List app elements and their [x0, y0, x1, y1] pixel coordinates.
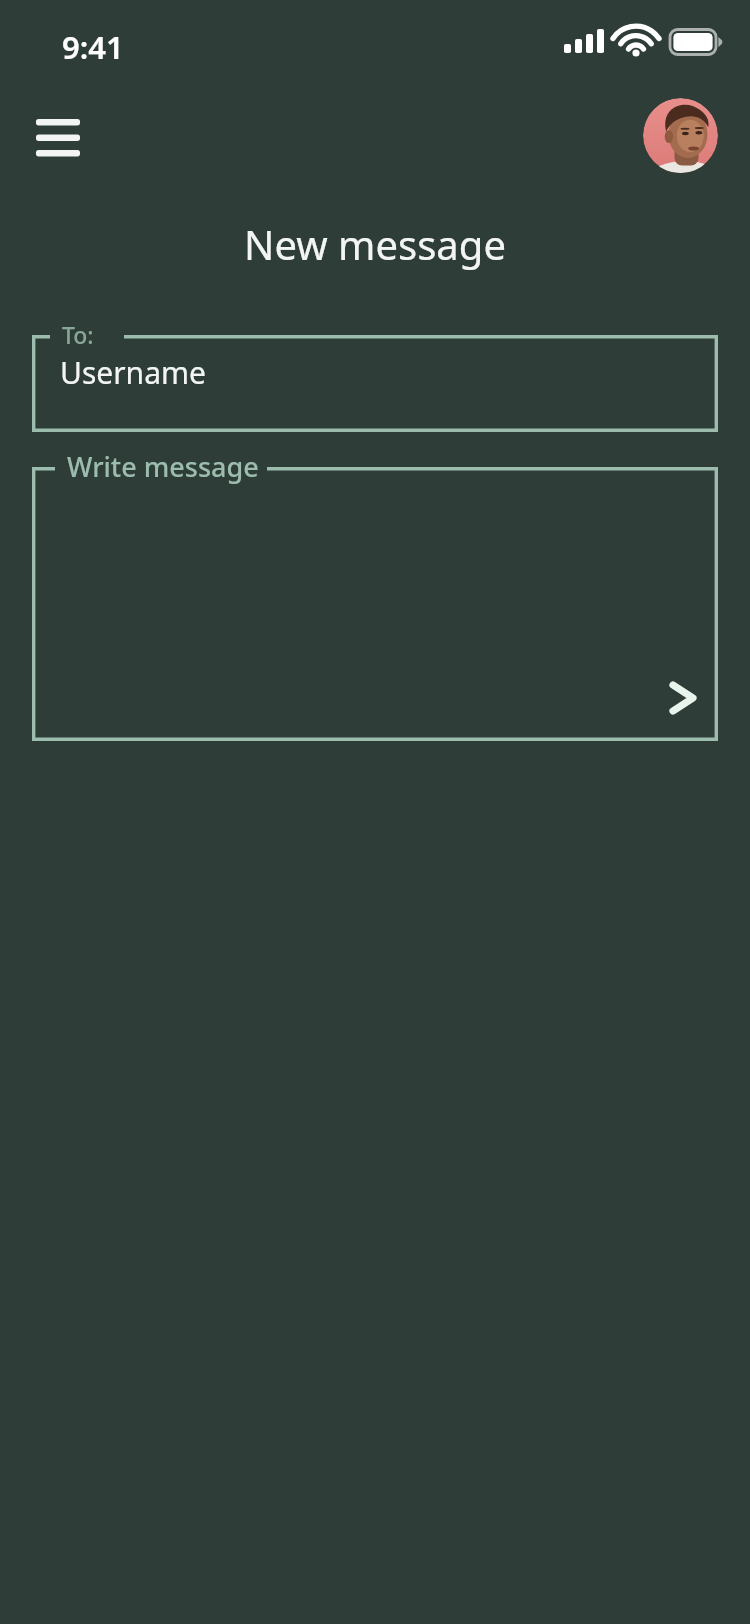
staticText: To: — [62, 319, 94, 350]
staticText: Write message — [67, 448, 259, 485]
button[interactable]: Menu — [16, 100, 100, 174]
button[interactable]: Profile — [643, 98, 718, 173]
staticText: Username — [60, 352, 206, 393]
staticText: New message — [0, 217, 750, 271]
button[interactable]: Send — [650, 665, 716, 731]
button[interactable]: To: — [32, 335, 718, 432]
button[interactable]: Write message — [32, 467, 718, 741]
staticText: 9:41 — [62, 26, 124, 68]
